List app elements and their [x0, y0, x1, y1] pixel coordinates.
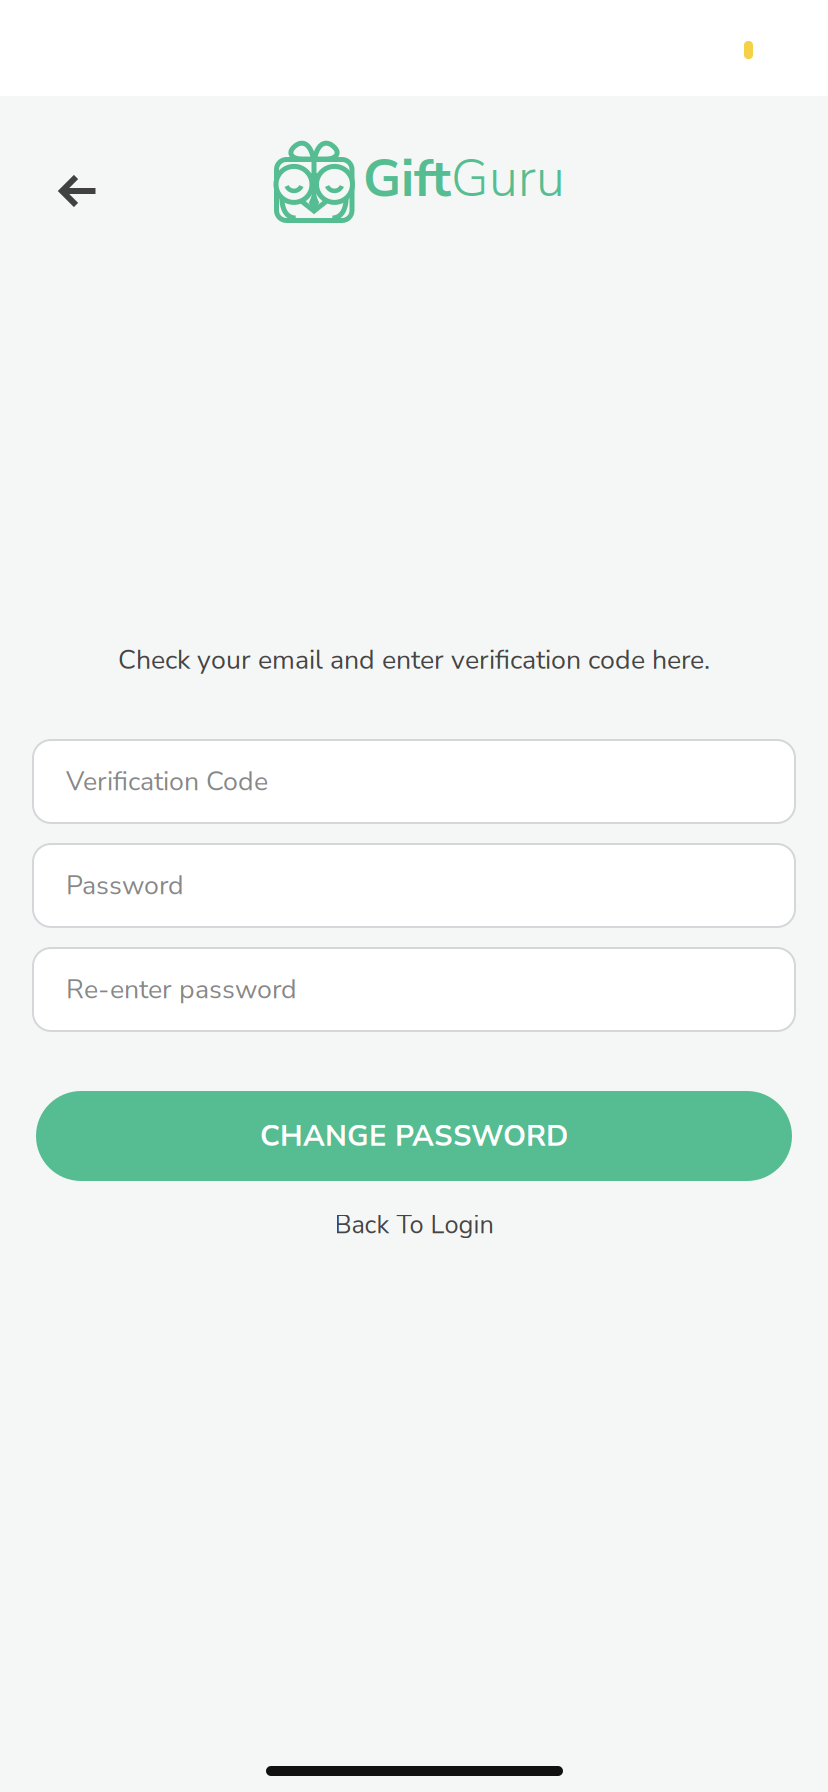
staticText: CHANGE PASSWORD: [260, 1116, 568, 1156]
button[interactable]: CHANGE PASSWORD: [36, 1091, 792, 1181]
staticText: Guru: [451, 143, 565, 214]
button[interactable]: Back: [46, 158, 112, 224]
button[interactable]: Back To Login: [264, 1200, 564, 1250]
staticText: Check your email and enter verification …: [118, 642, 710, 678]
staticText: Verification Code: [66, 763, 268, 800]
staticText: Password: [66, 867, 184, 904]
button[interactable]: Password: [33, 844, 795, 927]
button[interactable]: Re-enter password: [33, 948, 795, 1031]
staticText: Back To Login: [334, 1208, 493, 1242]
button[interactable]: Verification Code: [33, 740, 795, 823]
staticText: Re-enter password: [66, 971, 297, 1008]
staticText: Gift: [363, 143, 451, 214]
